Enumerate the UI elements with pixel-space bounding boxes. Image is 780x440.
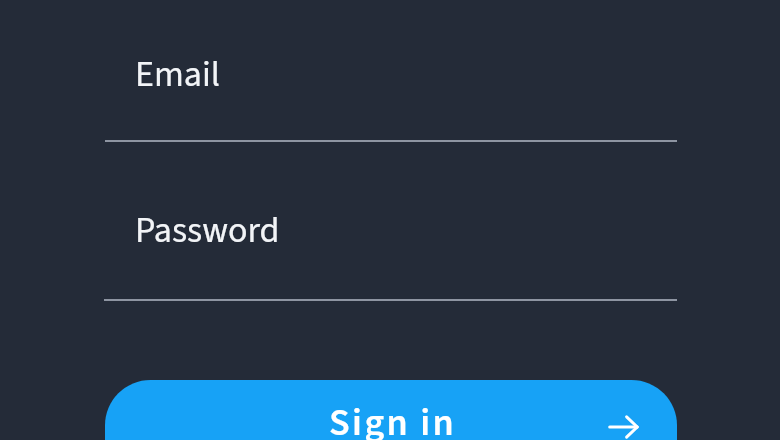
button[interactable]: Email xyxy=(105,44,677,142)
staticText: Email xyxy=(135,49,220,100)
button[interactable]: Sign in xyxy=(105,380,677,440)
staticText: Sign in xyxy=(329,396,457,440)
staticText: Password xyxy=(135,205,280,256)
button[interactable]: Password xyxy=(104,200,677,301)
